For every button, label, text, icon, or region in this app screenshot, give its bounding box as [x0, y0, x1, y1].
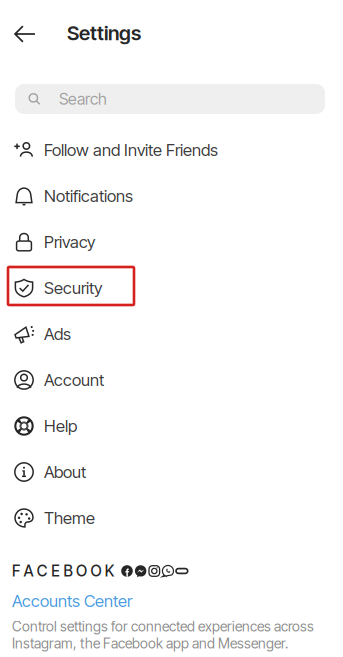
button[interactable]: Accounts Center — [12, 592, 132, 610]
button[interactable]: Settings — [67, 10, 141, 56]
button[interactable]: Theme — [0, 495, 343, 541]
button[interactable]: Security — [0, 265, 343, 311]
staticText: C — [37, 562, 48, 580]
button[interactable]: Privacy — [0, 219, 343, 265]
button[interactable]: Account — [0, 357, 343, 403]
staticText: A — [23, 562, 33, 580]
staticText: Security — [44, 278, 102, 298]
staticText: F — [12, 562, 20, 580]
staticText: B — [64, 562, 73, 580]
button[interactable]: Back — [1, 11, 49, 57]
staticText: Ads — [44, 324, 71, 344]
staticText: Control settings for connected experienc… — [12, 618, 314, 635]
staticText: K — [105, 562, 115, 580]
button[interactable]: About — [0, 449, 343, 495]
staticText: O — [76, 562, 87, 580]
staticText: Notifications — [44, 186, 133, 206]
staticText: Account — [44, 370, 104, 390]
staticText: O — [90, 562, 101, 580]
button[interactable]: Help — [0, 403, 343, 449]
staticText: Search — [59, 89, 107, 109]
staticText: Theme — [44, 508, 95, 528]
button[interactable]: Notifications — [0, 173, 343, 219]
staticText: Settings — [67, 21, 141, 45]
staticText: Accounts Center — [12, 591, 132, 611]
staticText: Instagram, the Facebook app and Messenge… — [12, 635, 288, 652]
staticText: Follow and Invite Friends — [44, 140, 218, 160]
staticText: E — [51, 562, 60, 580]
staticText: Help — [44, 416, 77, 436]
button[interactable]: Follow and Invite Friends — [0, 127, 343, 173]
staticText: Privacy — [44, 232, 95, 252]
button[interactable]: Search — [15, 84, 325, 114]
staticText: About — [44, 462, 86, 482]
button[interactable]: Ads — [0, 311, 343, 357]
